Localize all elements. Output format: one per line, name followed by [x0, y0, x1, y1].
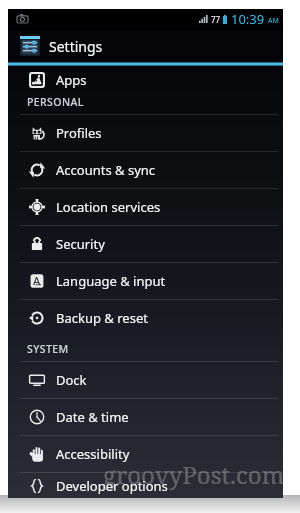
button[interactable]: Accessibility: [8, 436, 283, 473]
staticText: groovyPost.com: [103, 458, 285, 491]
button[interactable]: Profiles: [8, 115, 283, 152]
staticText: Location services: [56, 198, 161, 216]
button[interactable]: Apps: [8, 66, 283, 94]
staticText: Language & input: [56, 272, 166, 290]
staticText: Settings: [49, 37, 103, 56]
button[interactable]: Security: [8, 226, 283, 263]
staticText: Backup & reset: [56, 309, 148, 327]
button[interactable]: Settings: [8, 30, 283, 62]
staticText: Accounts & sync: [56, 161, 156, 179]
button[interactable]: A: [8, 263, 283, 300]
staticText: PERSONAL: [27, 95, 84, 109]
button[interactable]: Dock: [8, 362, 283, 399]
staticText: Profiles: [56, 124, 102, 142]
staticText: Accessibility: [56, 445, 130, 463]
staticText: Developer options: [56, 477, 168, 495]
staticText: A: [33, 273, 41, 288]
staticText: 10:39: [231, 10, 265, 28]
button[interactable]: Developer options: [8, 473, 283, 498]
staticText: Date & time: [56, 408, 129, 426]
staticText: Security: [56, 235, 105, 253]
staticText: Apps: [56, 71, 87, 89]
button[interactable]: Date & time: [8, 399, 283, 436]
other: Screenshot captured: [17, 14, 28, 23]
button[interactable]: Accounts & sync: [8, 152, 283, 189]
staticText: AM: [268, 16, 279, 26]
staticText: SYSTEM: [27, 342, 69, 356]
staticText: Dock: [56, 371, 87, 389]
button[interactable]: Location services: [8, 189, 283, 226]
button[interactable]: Backup & reset: [8, 300, 283, 336]
staticText: 77: [211, 14, 221, 25]
